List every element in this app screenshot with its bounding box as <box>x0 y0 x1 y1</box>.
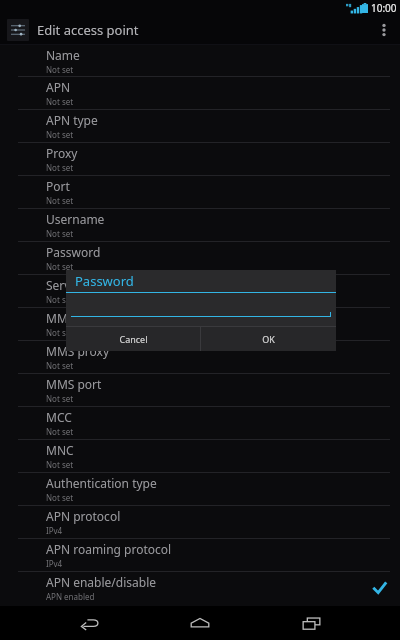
button[interactable]: Recent apps <box>289 606 333 640</box>
staticText: Proxy <box>46 145 78 161</box>
staticText: Port <box>46 178 70 194</box>
staticText: Not set <box>46 393 74 404</box>
staticText: 10:00 <box>371 1 397 15</box>
staticText: Not set <box>46 492 74 503</box>
staticText: MCC <box>46 409 72 425</box>
button[interactable]: Home <box>178 606 222 640</box>
button[interactable]: APN type <box>0 110 400 142</box>
button[interactable]: MMSC <box>0 308 400 340</box>
staticText: Server <box>46 277 83 293</box>
staticText: APN type <box>46 112 98 128</box>
button[interactable]: Cancel <box>66 327 200 351</box>
button[interactable]: Name <box>0 45 400 76</box>
staticText: Not set <box>46 261 74 272</box>
staticText: Not set <box>46 162 74 173</box>
staticText: Not set <box>46 96 74 107</box>
button[interactable]: APN <box>0 77 400 109</box>
staticText: Not set <box>46 129 74 140</box>
button[interactable]: APN roaming protocol <box>0 539 400 571</box>
staticText: APN protocol <box>46 508 121 524</box>
staticText: OK <box>262 333 275 345</box>
staticText: Not set <box>46 426 74 437</box>
button[interactable]: Password <box>0 242 400 274</box>
staticText: Cancel <box>119 333 148 345</box>
staticText: MMS port <box>46 376 102 392</box>
button[interactable]: Authentication type <box>0 473 400 505</box>
button[interactable]: Username <box>0 209 400 241</box>
staticText: MMSC <box>46 310 82 326</box>
other: App icon <box>7 19 29 41</box>
staticText: Not set <box>46 64 74 75</box>
button[interactable]: MMS proxy <box>0 341 400 373</box>
staticText: Password <box>75 272 134 290</box>
button[interactable]: MCC <box>0 407 400 439</box>
staticText: Name <box>46 47 80 63</box>
button[interactable]: MNC <box>0 440 400 472</box>
staticText: Username <box>46 211 105 227</box>
staticText: MNC <box>46 442 74 458</box>
staticText: Not set <box>46 459 74 470</box>
staticText: Not set <box>46 228 74 239</box>
button[interactable]: Proxy <box>0 143 400 175</box>
button[interactable]: Port <box>0 176 400 208</box>
button[interactable]: Back <box>67 606 111 640</box>
staticText: Not set <box>46 327 74 338</box>
staticText: IPv4 <box>46 525 63 536</box>
staticText: Not set <box>46 195 74 206</box>
staticText: APN <box>46 79 71 95</box>
button[interactable]: MMS port <box>0 374 400 406</box>
button[interactable]: More options <box>371 17 397 43</box>
button[interactable]: Server <box>0 275 400 307</box>
staticText: APN enable/disable <box>46 574 156 590</box>
staticText: APN enabled <box>46 591 95 602</box>
button[interactable]: OK <box>201 327 336 351</box>
staticText: Not set <box>46 294 74 305</box>
staticText: IPv4 <box>46 558 63 569</box>
button[interactable]: APN enable/disable <box>0 572 400 604</box>
staticText: APN roaming protocol <box>46 541 172 557</box>
staticText: Edit access point <box>37 21 139 39</box>
staticText: MMS proxy <box>46 343 110 359</box>
button[interactable]: APN protocol <box>0 506 400 538</box>
staticText: Authentication type <box>46 475 157 491</box>
staticText: Password <box>46 244 101 260</box>
staticText: Not set <box>46 360 74 371</box>
